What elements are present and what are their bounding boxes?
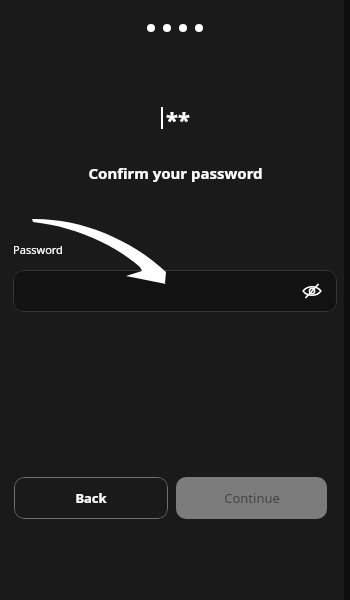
staticText: Back — [75, 489, 107, 507]
button[interactable]: Back — [14, 477, 168, 519]
staticText: Continue — [224, 489, 280, 507]
staticText: Password — [13, 242, 63, 257]
button[interactable]: Show password — [297, 276, 327, 306]
staticText: ** — [166, 104, 190, 132]
button[interactable]: Show password — [13, 270, 337, 312]
staticText: Confirm your password — [88, 163, 263, 183]
button[interactable]: Continue — [176, 477, 327, 519]
